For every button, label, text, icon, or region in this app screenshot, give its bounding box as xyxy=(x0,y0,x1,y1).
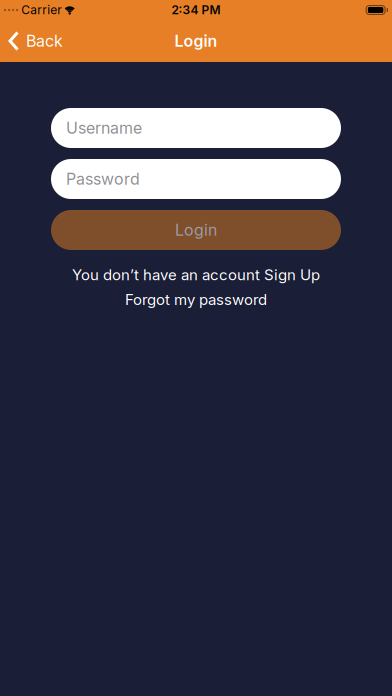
staticText: Login xyxy=(174,32,217,50)
button[interactable]: Password xyxy=(51,159,341,199)
button[interactable]: Back xyxy=(0,31,63,51)
button[interactable]: Username xyxy=(51,108,341,148)
staticText: Username xyxy=(66,119,142,137)
staticText: Sign Up xyxy=(264,266,320,284)
staticText: Password xyxy=(66,170,140,188)
button[interactable]: Sign Up xyxy=(264,266,320,284)
staticText: You don’t have an account xyxy=(72,266,260,284)
button[interactable]: Forgot my password xyxy=(125,291,267,308)
staticText: Forgot my password xyxy=(125,291,267,308)
staticText: Login xyxy=(175,221,217,239)
staticText: Back xyxy=(26,32,63,50)
staticText: 2:34 PM xyxy=(171,3,220,17)
staticText: Carrier xyxy=(21,3,62,17)
button[interactable]: Login xyxy=(51,210,341,250)
